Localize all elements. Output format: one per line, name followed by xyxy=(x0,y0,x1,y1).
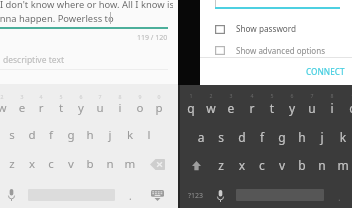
staticText: f xyxy=(254,129,270,145)
staticText: . xyxy=(338,190,341,204)
staticText: 7 xyxy=(304,92,320,99)
staticText: i xyxy=(324,100,340,116)
staticText: l xyxy=(141,127,157,143)
staticText: o xyxy=(345,100,352,116)
staticText: 7 xyxy=(92,93,108,100)
button[interactable]: Hide keyboard xyxy=(151,190,164,201)
staticText: t xyxy=(264,100,280,116)
staticText: j xyxy=(102,127,118,143)
staticText: CONNECT xyxy=(306,66,345,77)
staticText: s xyxy=(4,127,20,143)
staticText: w xyxy=(203,100,219,116)
button[interactable]: Voice input xyxy=(8,189,15,201)
staticText: onna happen. Powerless to xyxy=(0,12,114,25)
staticText: h xyxy=(82,127,98,143)
staticText: z xyxy=(213,157,229,173)
staticText: 8 xyxy=(112,93,128,100)
staticText: 0 xyxy=(151,93,167,100)
staticText: ?123 xyxy=(188,191,204,201)
staticText: v xyxy=(274,157,290,173)
staticText: 8 xyxy=(324,92,340,99)
staticText: n xyxy=(102,156,118,172)
button[interactable]: Show password xyxy=(208,18,348,40)
staticText: 3 xyxy=(14,93,30,100)
staticText: c xyxy=(43,156,59,172)
staticText: x xyxy=(24,156,40,172)
button[interactable]: Show advanced options xyxy=(208,40,348,58)
staticText: u xyxy=(92,100,108,116)
staticText: , I don't know where or how. All I know … xyxy=(0,0,173,11)
staticText: 5 xyxy=(53,93,69,100)
staticText: y xyxy=(284,100,300,116)
staticText: g xyxy=(63,127,79,143)
staticText: p xyxy=(151,100,167,116)
staticText: o xyxy=(132,100,148,116)
staticText: g xyxy=(274,129,290,145)
staticText: 1 xyxy=(183,92,199,99)
staticText: d xyxy=(24,127,40,143)
staticText: x xyxy=(234,157,250,173)
staticText: f xyxy=(43,127,59,143)
staticText: u xyxy=(304,100,320,116)
staticText: 2 xyxy=(203,92,219,99)
staticText: w xyxy=(0,100,10,116)
staticText: e xyxy=(14,100,30,116)
staticText: Show password xyxy=(236,23,297,34)
staticText: q xyxy=(183,100,199,116)
staticText: c xyxy=(254,157,270,173)
staticText: 2 xyxy=(0,93,10,100)
staticText: n xyxy=(314,157,330,173)
staticText: a xyxy=(193,129,209,145)
staticText: v xyxy=(63,156,79,172)
staticText: 3 xyxy=(223,92,239,99)
staticText: descriptive text xyxy=(3,54,64,66)
staticText: 119 / 120 xyxy=(137,33,168,43)
staticText: r xyxy=(33,100,49,116)
staticText: h xyxy=(294,129,310,145)
staticText: m xyxy=(122,156,138,172)
staticText: m xyxy=(335,157,351,173)
button[interactable]: Voice input xyxy=(217,190,224,202)
staticText: k xyxy=(122,127,138,143)
button[interactable]: CONNECT xyxy=(299,61,349,80)
staticText: k xyxy=(335,129,351,145)
staticText: 6 xyxy=(284,92,300,99)
staticText: z xyxy=(4,156,20,172)
staticText: b xyxy=(82,156,98,172)
staticText: e xyxy=(223,100,239,116)
staticText: s xyxy=(213,129,229,145)
button[interactable]: Shift xyxy=(192,161,201,171)
button[interactable]: Backspace xyxy=(150,159,165,170)
staticText: . xyxy=(129,189,132,203)
staticText: t xyxy=(53,100,69,116)
staticText: 5 xyxy=(264,92,280,99)
staticText: 4 xyxy=(244,92,260,99)
staticText: Show advanced options xyxy=(236,45,325,56)
staticText: 6 xyxy=(73,93,89,100)
staticText: i xyxy=(112,100,128,116)
staticText: 4 xyxy=(33,93,49,100)
staticText: 9 xyxy=(132,93,148,100)
staticText: j xyxy=(314,129,330,145)
staticText: b xyxy=(294,157,310,173)
staticText: y xyxy=(73,100,89,116)
staticText: d xyxy=(234,129,250,145)
staticText: r xyxy=(244,100,260,116)
